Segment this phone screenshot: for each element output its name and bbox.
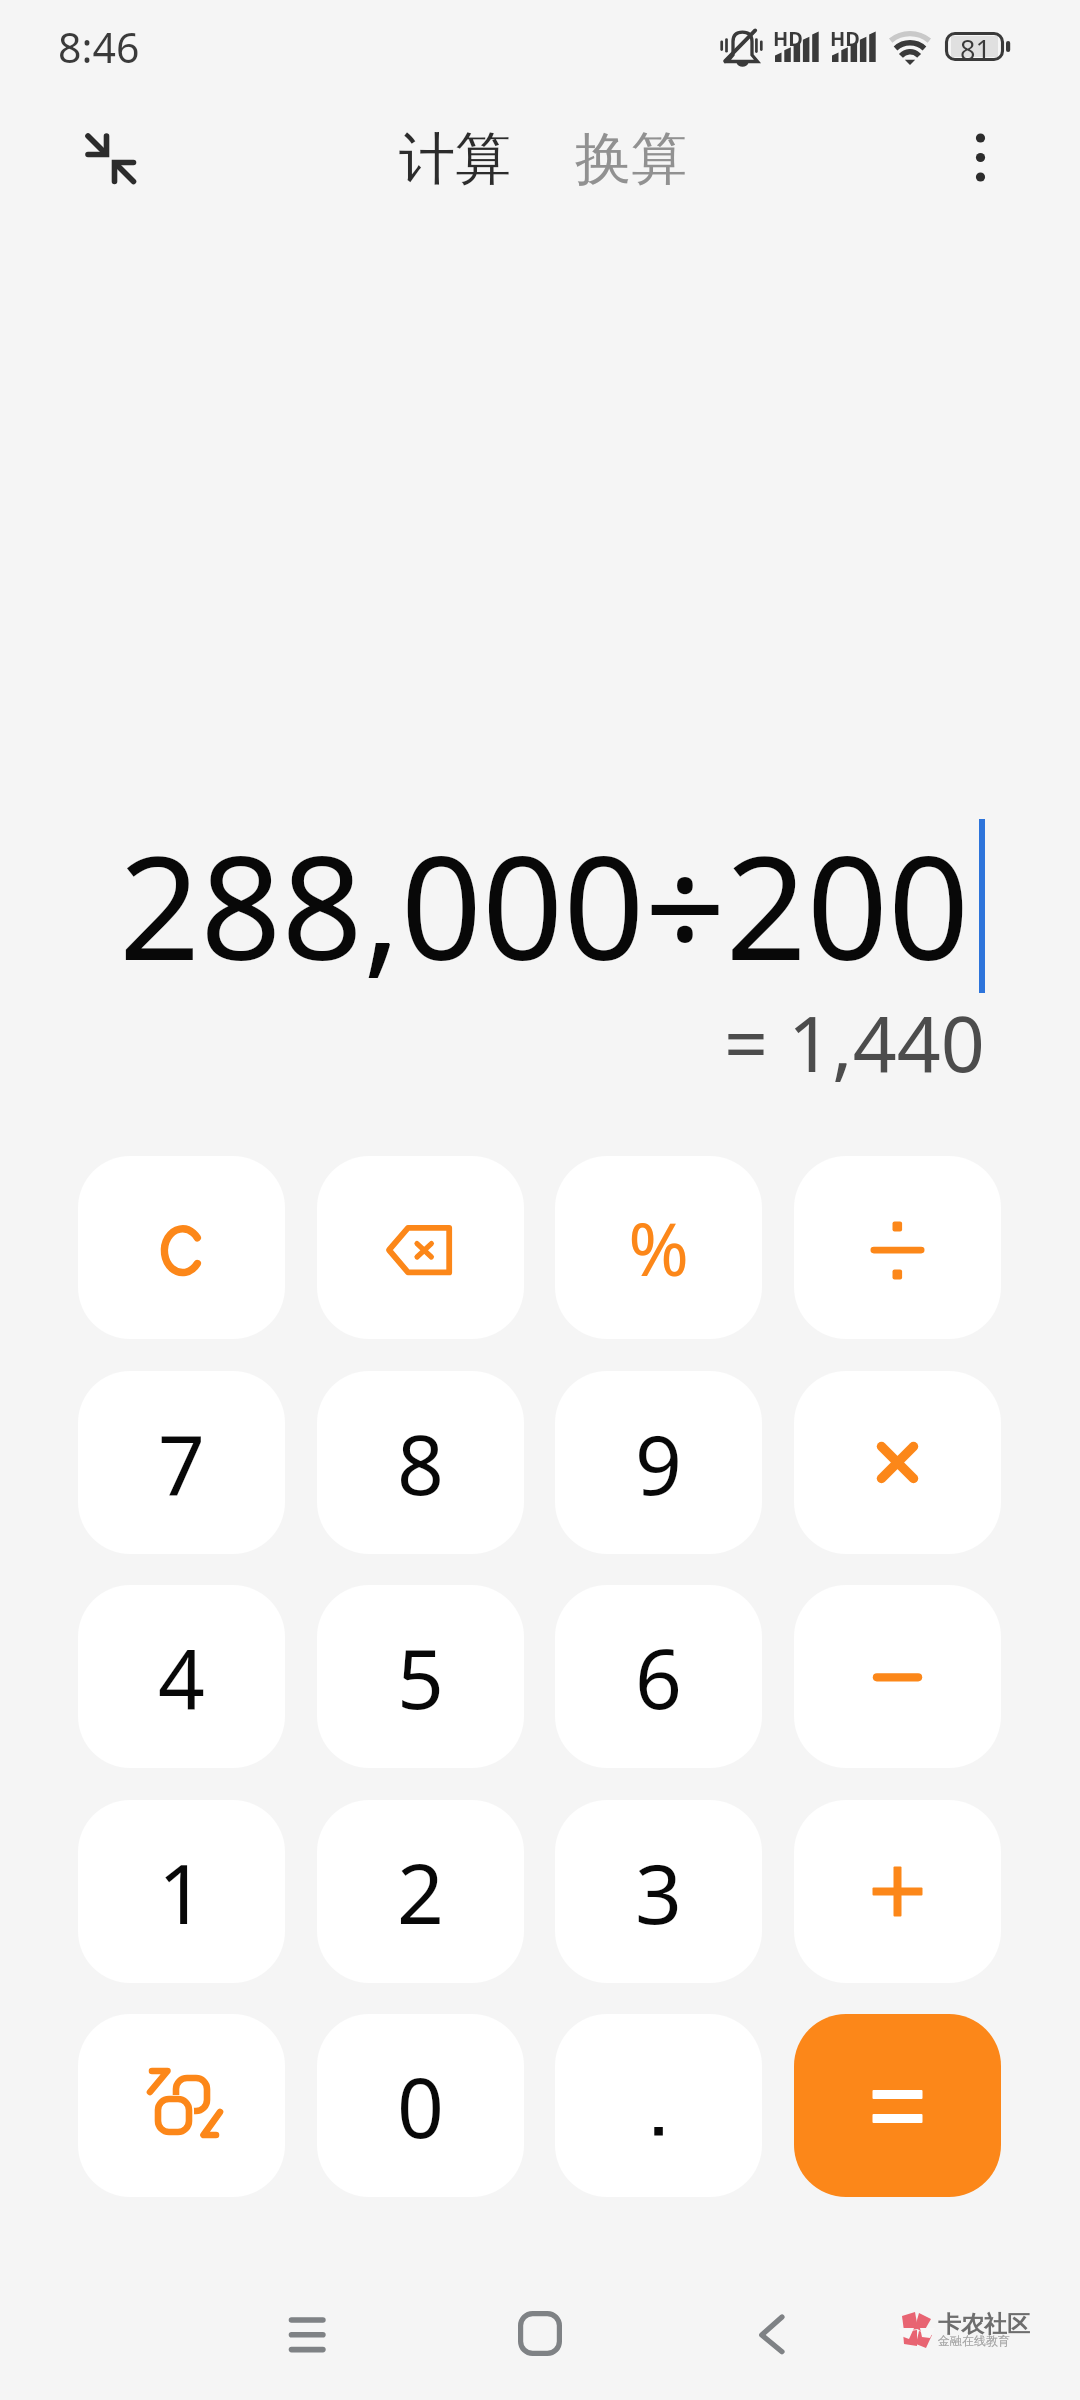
button[interactable]: Collapse [56, 104, 164, 212]
button[interactable]: Recents [252, 2279, 362, 2389]
button[interactable]: 9 [555, 1371, 762, 1554]
button[interactable]: 计算 [399, 124, 511, 195]
button[interactable]: Add [794, 1800, 1001, 1983]
staticText: HD [773, 25, 803, 52]
button[interactable]: Unit conversion [78, 2014, 285, 2197]
button[interactable]: Home [485, 2279, 595, 2389]
button[interactable]: Equals [794, 2014, 1001, 2197]
staticText: 卡农社区 [938, 2310, 1030, 2339]
staticText: 1 [158, 1836, 205, 1948]
button[interactable]: More options [926, 104, 1034, 212]
staticText: 金融在线教育 [938, 2333, 1010, 2348]
button[interactable]: 8 [317, 1371, 524, 1554]
button[interactable]: Subtract [794, 1585, 1001, 1768]
button[interactable]: 6 [555, 1585, 762, 1768]
staticText: 计算 [399, 124, 511, 195]
button[interactable]: Clear [78, 1156, 285, 1339]
button[interactable]: Backspace [317, 1156, 524, 1339]
staticText: 5 [397, 1621, 444, 1733]
button[interactable]: Decimal point [555, 2014, 762, 2197]
staticText: 288,000÷200 [119, 808, 970, 1001]
staticText: 8 [397, 1407, 444, 1519]
button[interactable]: 换算 [575, 124, 687, 195]
staticText: 换算 [575, 124, 687, 195]
staticText: 2 [397, 1836, 444, 1948]
staticText: % [628, 1198, 689, 1297]
button[interactable]: 3 [555, 1800, 762, 1983]
staticText: = 1,440 [724, 990, 985, 1095]
staticText: 0 [397, 2050, 444, 2162]
button[interactable]: 1 [78, 1800, 285, 1983]
staticText: 6 [635, 1621, 682, 1733]
button[interactable]: 0 [317, 2014, 524, 2197]
button[interactable]: % [555, 1156, 762, 1339]
button[interactable]: Divide [794, 1156, 1001, 1339]
button[interactable]: 7 [78, 1371, 285, 1554]
button[interactable]: Back [717, 2279, 827, 2389]
staticText: 4 [158, 1621, 205, 1733]
staticText: 3 [635, 1836, 682, 1948]
staticText: 7 [158, 1407, 205, 1519]
button[interactable]: 5 [317, 1585, 524, 1768]
button[interactable]: 2 [317, 1800, 524, 1983]
staticText: HD [830, 25, 860, 52]
staticText: 9 [635, 1407, 682, 1519]
staticText: 8:46 [58, 19, 140, 75]
button[interactable]: Multiply [794, 1371, 1001, 1554]
button[interactable]: 4 [78, 1585, 285, 1768]
staticText: 81 [960, 31, 991, 62]
